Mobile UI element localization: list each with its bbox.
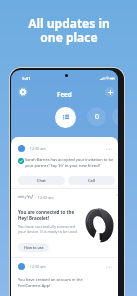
staticText: You are connected to the Hey! Bracelet! <box>18 209 75 221</box>
button[interactable]: More devices <box>112 107 118 126</box>
staticText: You have successfully connected your dev… <box>18 224 78 234</box>
staticText: You have created an account in the FeelC… <box>18 277 83 288</box>
button[interactable]: More options <box>106 265 113 269</box>
staticText: · 12:30 am <box>33 195 54 200</box>
staticText: 9:41 <box>22 76 31 82</box>
staticText: · 12:30 am <box>25 264 46 269</box>
button[interactable]: How to use <box>18 243 49 252</box>
staticText: · 12:30 am <box>25 146 46 151</box>
button[interactable]: Bluetooth device <box>87 107 106 126</box>
button[interactable]: More options <box>106 147 113 151</box>
staticText: Call <box>88 178 95 183</box>
button[interactable]: Add <box>105 87 115 97</box>
staticText: All updates in one place <box>28 15 110 46</box>
staticText: How to use <box>24 245 44 250</box>
staticText: Feed <box>57 90 72 98</box>
staticText: Sarah Barnes has accepted your invitatio… <box>25 157 114 168</box>
button[interactable]: Settings <box>18 87 28 97</box>
button[interactable]: Call <box>68 176 115 185</box>
button[interactable]: All updates <box>55 107 76 128</box>
staticText: Chat <box>37 178 46 183</box>
button[interactable]: More options <box>116 193 118 197</box>
button[interactable]: Chat <box>18 176 65 185</box>
